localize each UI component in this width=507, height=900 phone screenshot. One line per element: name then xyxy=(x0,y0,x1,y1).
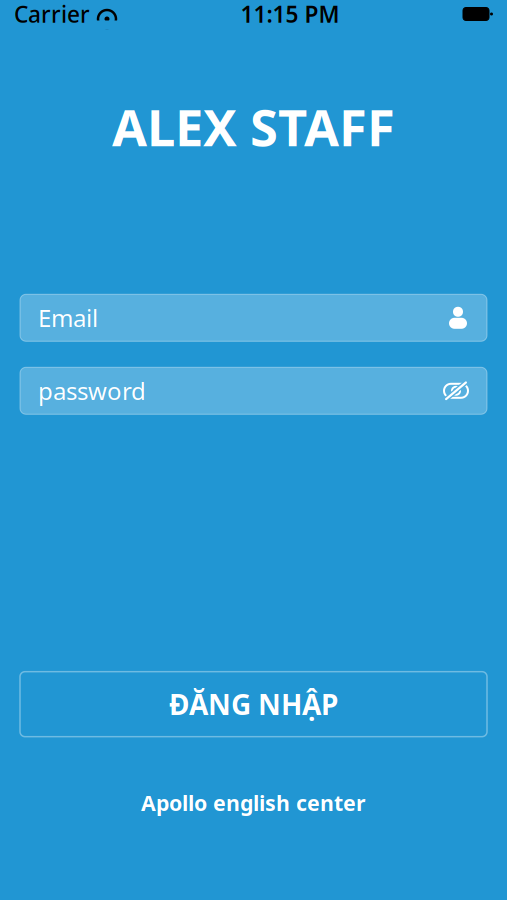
staticText: ALEX STAFF xyxy=(112,93,395,160)
staticText: Carrier xyxy=(14,0,90,29)
staticText: Email xyxy=(38,302,98,334)
staticText: ĐĂNG NHẬP xyxy=(169,686,338,723)
staticText: password xyxy=(38,375,146,407)
button[interactable]: ĐĂNG NHẬP xyxy=(20,672,487,737)
button[interactable]: Show password xyxy=(20,367,487,414)
staticText: Apollo english center xyxy=(141,789,366,817)
staticText: 11:15 PM xyxy=(240,0,339,29)
button[interactable]: Email xyxy=(20,294,487,341)
